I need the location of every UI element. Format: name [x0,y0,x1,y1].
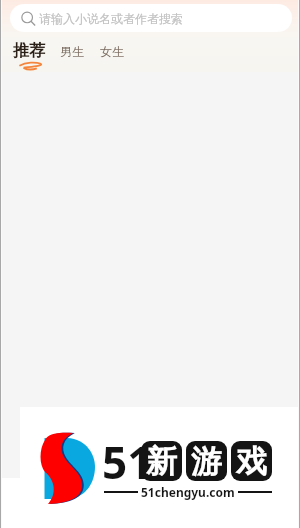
staticText: 女生 [100,44,124,59]
staticText: 戏 [236,442,267,481]
staticText: 51chengyu.com [141,484,235,500]
staticText: 推荐 [13,41,45,61]
button[interactable]: 女生 [100,41,124,59]
staticText: 游 [191,442,222,481]
button[interactable]: 推荐 [13,41,45,70]
button[interactable]: 男生 [60,41,84,59]
staticText: 男生 [60,44,84,59]
button[interactable]: 请输入小说名或者作者搜索 [10,4,292,32]
staticText: 新 [146,442,177,481]
staticText: 请输入小说名或者作者搜索 [39,11,183,26]
staticText: 51 [102,432,153,484]
